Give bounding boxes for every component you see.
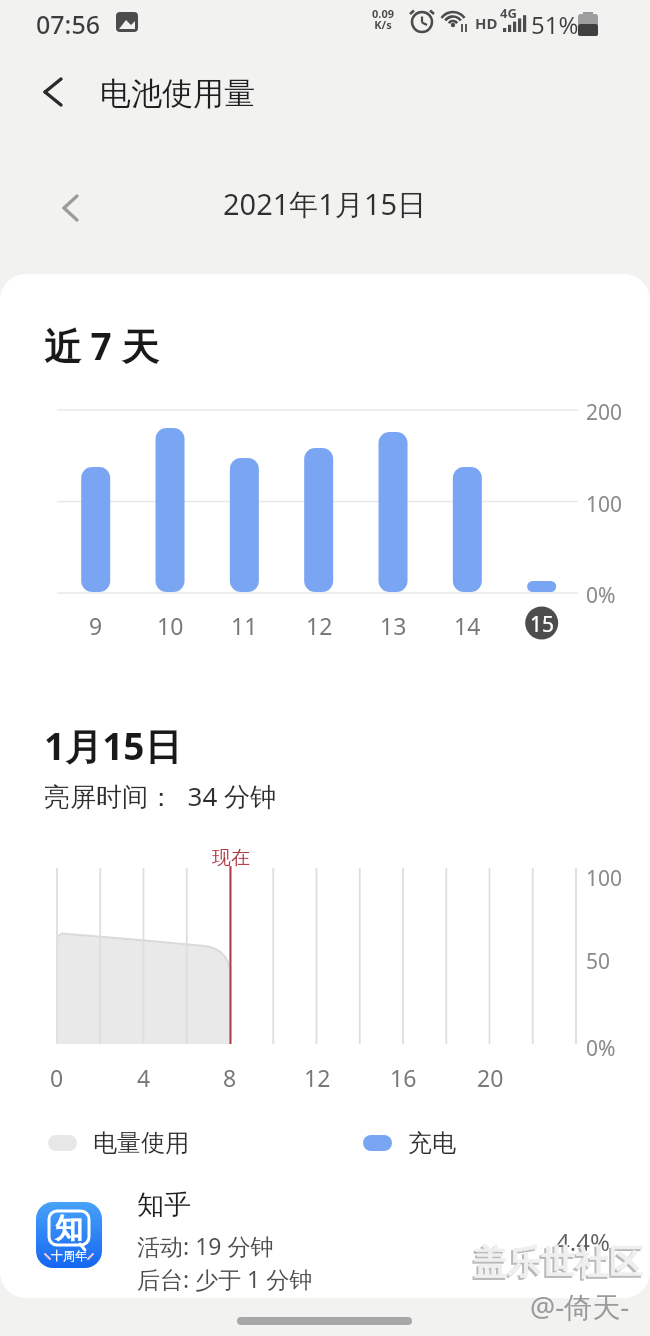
staticText: 12: [304, 1062, 331, 1093]
staticText: 活动: 19 分钟: [137, 1230, 274, 1261]
staticText: 11: [231, 610, 258, 641]
staticText: 亮屏时间： 34 分钟: [44, 778, 277, 814]
button[interactable]: 14: [437, 610, 497, 641]
staticText: 4.4%: [556, 1225, 610, 1258]
button[interactable]: 11: [214, 610, 274, 641]
staticText: 0%: [586, 1034, 616, 1063]
staticText: 13: [380, 610, 407, 641]
staticText: 8: [223, 1062, 237, 1093]
staticText: @-倚天-: [530, 1287, 630, 1325]
staticText: 0%: [586, 581, 616, 610]
button[interactable]: [30, 70, 86, 120]
staticText: 近 7 天: [44, 320, 159, 371]
staticText: 200: [586, 398, 623, 427]
button[interactable]: 15: [512, 610, 572, 639]
button[interactable]: 12: [289, 610, 349, 641]
staticText: 07:56: [36, 7, 101, 41]
staticText: 十周年: [51, 1248, 87, 1263]
staticText: HD: [475, 13, 498, 33]
button[interactable]: [44, 186, 96, 230]
staticText: 9: [89, 610, 103, 641]
staticText: 100: [586, 864, 623, 893]
staticText: 后台: 少于 1 分钟: [137, 1263, 313, 1294]
staticText: 50: [586, 947, 611, 976]
staticText: 16: [390, 1062, 417, 1093]
staticText: 电量使用: [93, 1128, 189, 1158]
staticText: 15: [530, 610, 555, 639]
staticText: 51%: [531, 8, 579, 41]
button[interactable]: 2021年1月15日: [223, 184, 427, 224]
button[interactable]: [24, 1190, 624, 1290]
button[interactable]: 9: [66, 610, 126, 641]
staticText: 1月15日: [44, 720, 182, 771]
staticText: 4: [137, 1062, 151, 1093]
staticText: 0.09 K/s: [372, 6, 394, 33]
staticText: 100: [586, 490, 623, 519]
button[interactable]: 13: [363, 610, 423, 641]
staticText: 10: [157, 610, 184, 641]
staticText: 充电: [408, 1128, 456, 1158]
button[interactable]: 10: [140, 610, 200, 641]
staticText: 20: [477, 1062, 504, 1093]
staticText: 0: [50, 1062, 64, 1093]
staticText: 盖乐世社区: [473, 1241, 643, 1284]
staticText: 电池使用量: [100, 74, 255, 113]
staticText: 4G: [500, 4, 517, 22]
staticText: 12: [306, 610, 333, 641]
staticText: 盖乐世社区: [471, 1243, 641, 1286]
staticText: 知: [55, 1211, 83, 1246]
staticText: 知乎: [137, 1188, 191, 1222]
staticText: 现在: [212, 846, 250, 870]
staticText: 14: [454, 610, 481, 641]
